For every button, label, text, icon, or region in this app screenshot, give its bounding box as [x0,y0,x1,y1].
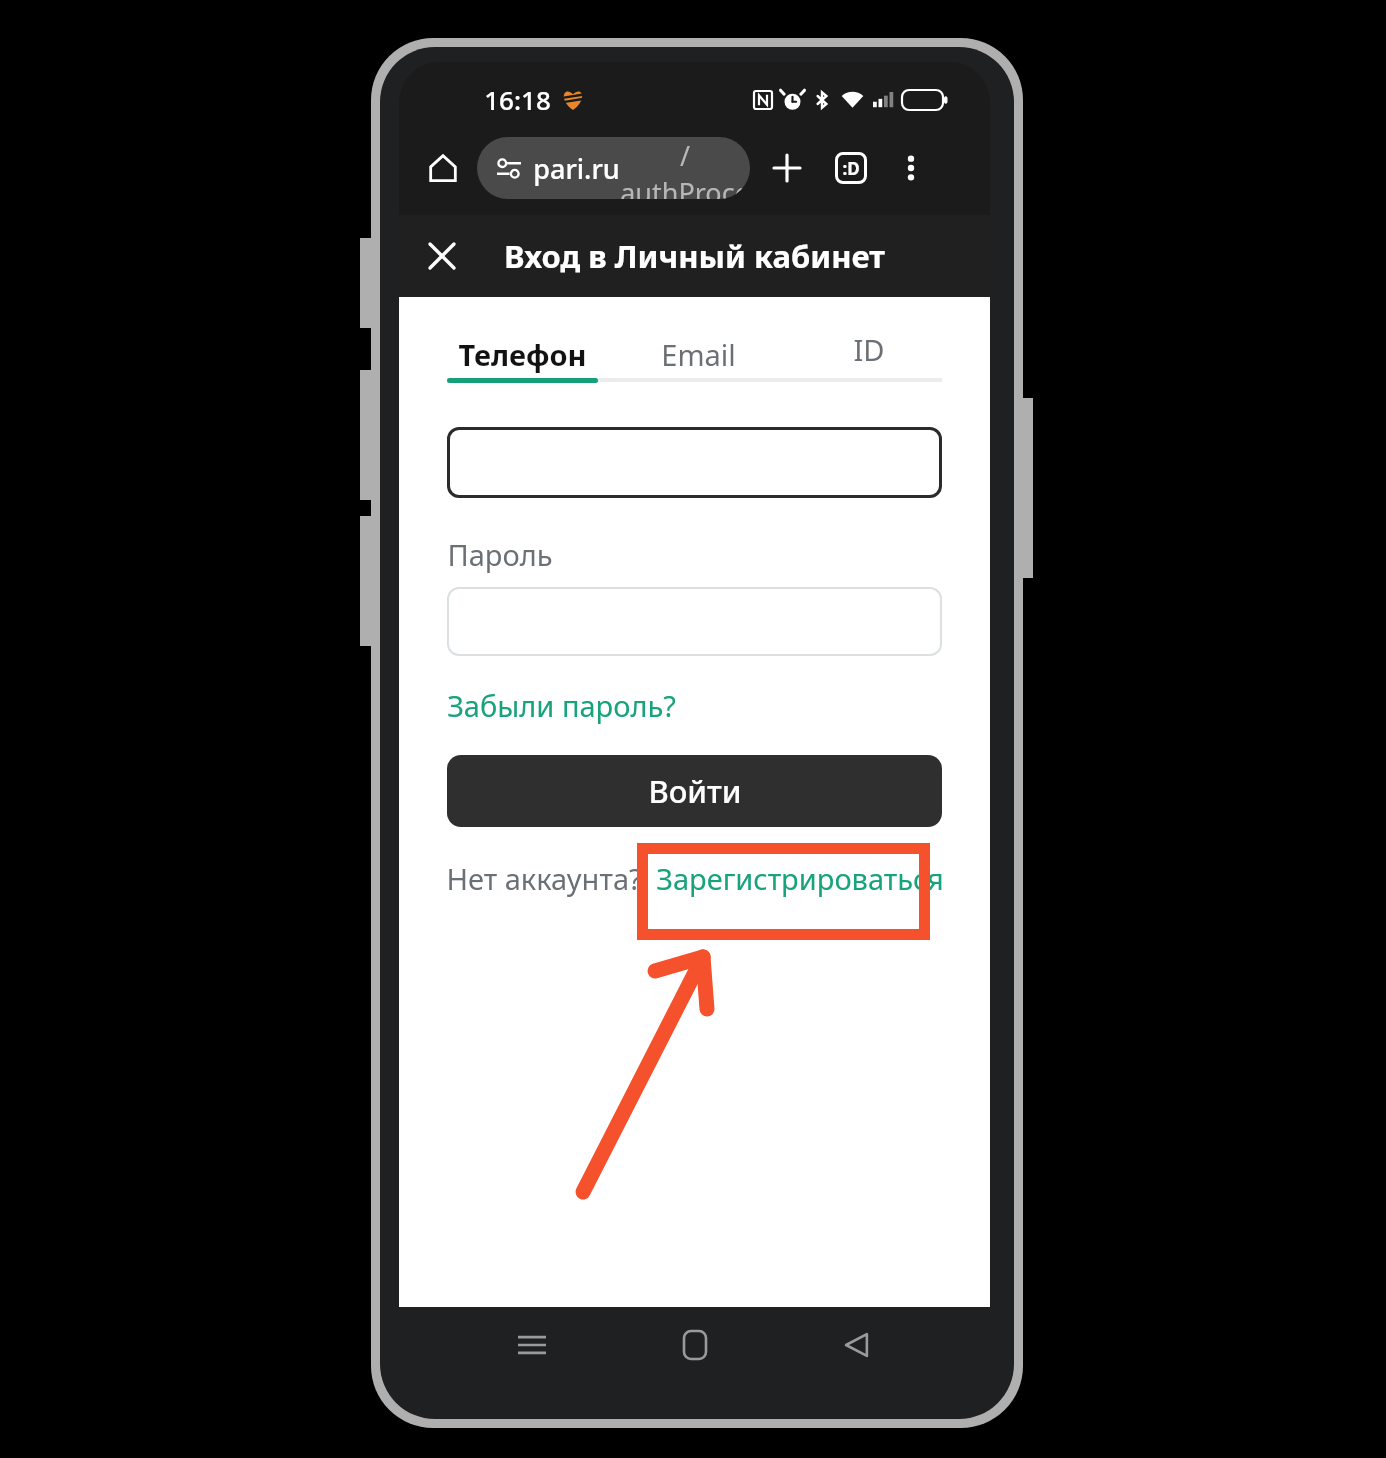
button[interactable]: Email [648,330,748,378]
staticText: Нет аккаунта? [446,859,642,898]
button[interactable] [447,427,942,498]
button[interactable]: Забыли пароль? [447,686,676,725]
staticText: Войти [648,770,742,812]
button[interactable]: Back [827,1315,887,1375]
staticText: Телефон [458,335,587,374]
button[interactable] [447,587,942,656]
button[interactable]: pari.ru [477,137,750,199]
staticText: 16:18 [484,82,551,117]
button[interactable]: Войти [447,755,942,827]
staticText: Вход в Личный кабинет [504,235,885,277]
button[interactable]: Close [413,227,471,285]
button[interactable]: Зарегистрироваться [656,859,944,898]
button[interactable]: More options [886,143,936,193]
button[interactable]: Tabs [824,141,878,195]
button[interactable]: ID клиента [796,330,942,378]
staticText: ID клиента [796,330,942,378]
staticText: Забыли пароль? [447,686,676,725]
button[interactable]: Home [417,142,469,194]
staticText: pari.ru [533,150,620,187]
staticText: Зарегистрироваться [656,859,944,898]
staticText: Пароль [447,535,553,574]
button[interactable]: Телефон [447,330,598,378]
staticText: /authProce [620,137,750,199]
button[interactable]: Home [665,1315,725,1375]
button[interactable]: Recent apps [502,1315,562,1375]
staticText: :D [842,157,860,180]
staticText: Email [661,335,736,374]
button[interactable]: New tab [760,141,814,195]
